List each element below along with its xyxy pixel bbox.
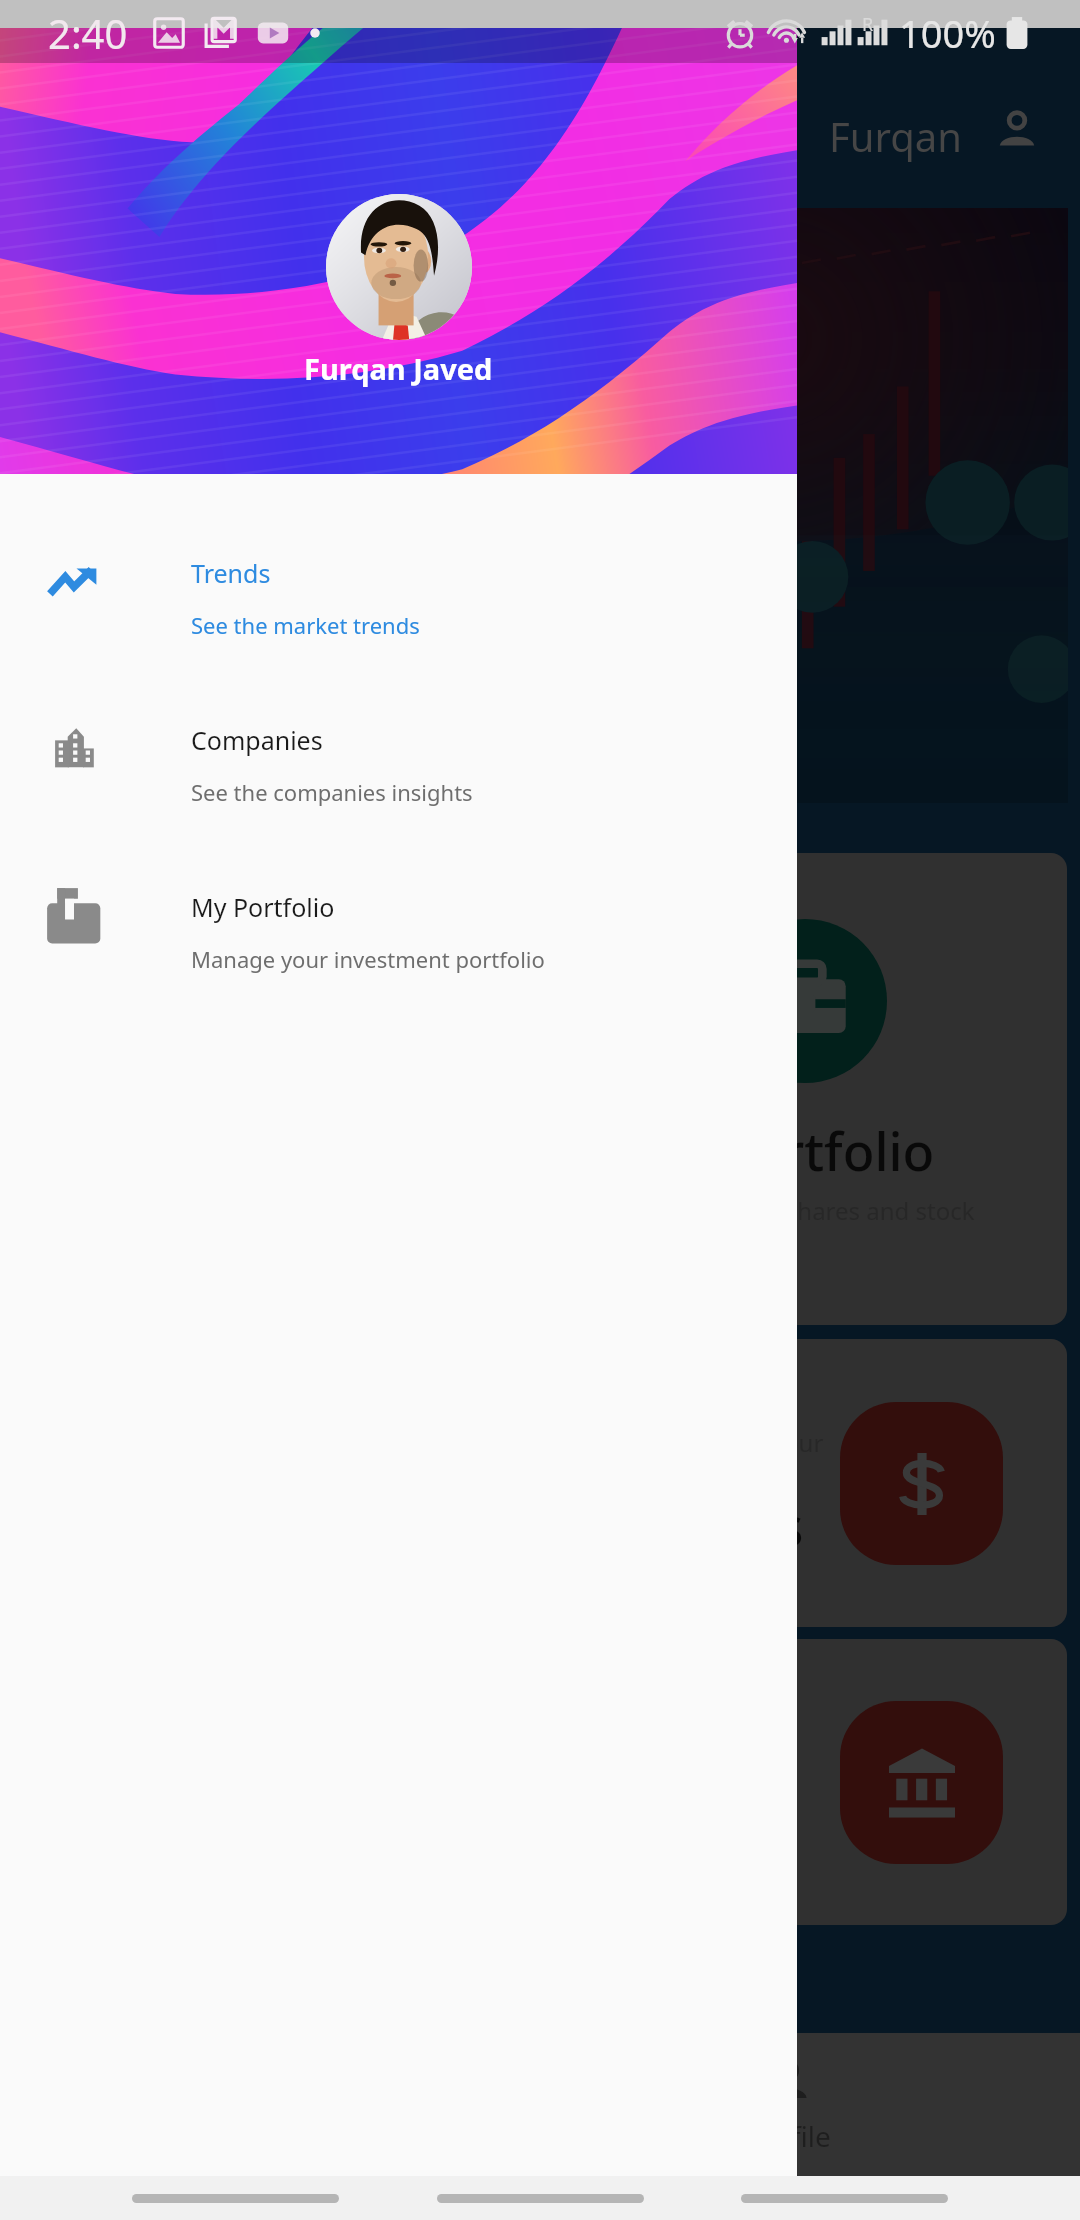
button[interactable]: Companies: [0, 664, 797, 831]
button[interactable]: My Portfolio: [0, 831, 797, 998]
button[interactable]: My Portfolio: [543, 853, 1067, 1325]
button[interactable]: Buy and sell your: [543, 1339, 1067, 1627]
staticText: Shares: [630, 1488, 804, 1562]
staticText: Profile: [746, 2117, 831, 2155]
staticText: See the market trends: [191, 610, 420, 640]
staticText: Companies: [191, 723, 323, 757]
button[interactable]: Profile: [992, 105, 1042, 155]
staticText: R: [862, 12, 874, 37]
button[interactable]: Invest with: [543, 1639, 1067, 1925]
staticText: Manage your shares and stock: [630, 1194, 975, 1227]
staticText: Buy and sell your: [630, 1426, 824, 1459]
staticText: Furqan: [829, 109, 962, 163]
staticText: 100%: [899, 7, 996, 59]
button[interactable]: Trends: [0, 497, 797, 664]
staticText: Furqan Javed: [304, 349, 493, 388]
staticText: My Portfolio: [191, 890, 335, 924]
button[interactable]: Open navigation drawer: [700, 63, 790, 153]
staticText: 2:40: [48, 6, 128, 60]
staticText: Manage your investment portfolio: [191, 944, 545, 974]
staticText: My Portfolio: [630, 1115, 935, 1186]
button[interactable]: Profile: [653, 2033, 923, 2176]
staticText: See the companies insights: [191, 777, 473, 807]
staticText: Trends: [191, 556, 271, 590]
